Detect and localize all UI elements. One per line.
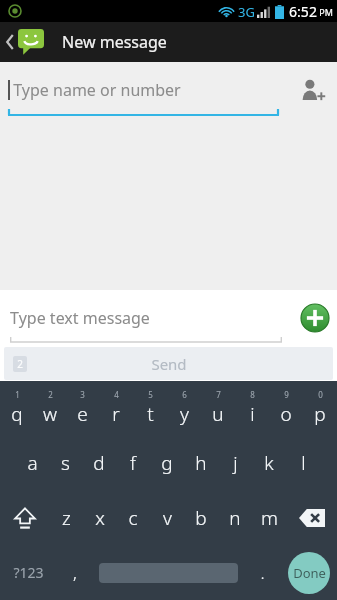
staticText: e bbox=[77, 401, 88, 427]
button[interactable]: d bbox=[82, 435, 116, 490]
staticText: f bbox=[130, 450, 136, 476]
staticText: d bbox=[93, 450, 105, 476]
button[interactable]: k bbox=[252, 435, 286, 490]
button[interactable]: b bbox=[184, 490, 218, 545]
staticText: 2 bbox=[48, 389, 53, 400]
button[interactable]: m bbox=[252, 490, 286, 545]
staticText: s bbox=[61, 450, 70, 476]
button[interactable]: ?123 bbox=[0, 545, 57, 600]
button[interactable]: Type name or number bbox=[0, 62, 289, 118]
button[interactable]: n bbox=[218, 490, 252, 545]
staticText: b bbox=[195, 505, 207, 531]
button[interactable]: 3 bbox=[66, 381, 99, 435]
button[interactable]: Shift bbox=[0, 490, 50, 545]
staticText: j bbox=[233, 450, 238, 476]
staticText: x bbox=[95, 505, 105, 531]
button[interactable]: j bbox=[218, 435, 252, 490]
button[interactable]: , bbox=[57, 545, 93, 600]
button[interactable]: 5 bbox=[133, 381, 167, 435]
button[interactable]: x bbox=[83, 490, 116, 545]
button[interactable]: a bbox=[16, 435, 49, 490]
button[interactable]: g bbox=[150, 435, 184, 490]
staticText: 7 bbox=[216, 389, 221, 400]
button[interactable]: 8 bbox=[235, 381, 269, 435]
staticText: y bbox=[180, 401, 189, 427]
button[interactable]: 0 bbox=[303, 381, 337, 435]
staticText: 0 bbox=[318, 389, 323, 400]
staticText: New message bbox=[62, 31, 167, 53]
button[interactable]: h bbox=[184, 435, 218, 490]
staticText: h bbox=[195, 450, 207, 476]
staticText: k bbox=[264, 450, 274, 476]
staticText: u bbox=[212, 401, 224, 427]
staticText: q bbox=[11, 401, 23, 427]
button[interactable]: . bbox=[244, 545, 280, 600]
button[interactable]: Backspace bbox=[286, 490, 337, 545]
staticText: z bbox=[62, 505, 71, 531]
staticText: PM bbox=[319, 6, 333, 18]
staticText: n bbox=[229, 505, 241, 531]
button[interactable]: l bbox=[286, 435, 320, 490]
staticText: 3 bbox=[80, 389, 85, 400]
button[interactable]: Add attachment bbox=[292, 290, 337, 346]
button[interactable]: 9 bbox=[269, 381, 303, 435]
staticText: p bbox=[314, 401, 326, 427]
staticText: Send bbox=[151, 354, 187, 374]
staticText: 8 bbox=[250, 389, 255, 400]
button[interactable]: Space bbox=[93, 545, 244, 600]
staticText: 6:52 bbox=[289, 2, 317, 21]
staticText: ?123 bbox=[13, 563, 44, 582]
staticText: 3G bbox=[238, 3, 255, 21]
staticText: Type name or number bbox=[13, 79, 181, 101]
button[interactable]: v bbox=[150, 490, 184, 545]
staticText: Done bbox=[293, 564, 326, 582]
staticText: c bbox=[128, 505, 138, 531]
staticText: t bbox=[147, 401, 154, 427]
staticText: , bbox=[73, 561, 77, 584]
staticText: 1 bbox=[15, 389, 20, 400]
button[interactable]: Back bbox=[0, 22, 48, 62]
button[interactable]: 4 bbox=[99, 381, 133, 435]
button[interactable]: f bbox=[116, 435, 150, 490]
staticText: r bbox=[112, 401, 120, 427]
button[interactable]: 2 bbox=[33, 381, 66, 435]
staticText: 2 bbox=[17, 357, 23, 371]
button[interactable]: 2 bbox=[4, 347, 333, 380]
staticText: 9 bbox=[284, 389, 289, 400]
button[interactable]: Add contact bbox=[289, 62, 337, 118]
button[interactable]: s bbox=[49, 435, 82, 490]
button[interactable]: 7 bbox=[201, 381, 235, 435]
staticText: 4 bbox=[114, 389, 119, 400]
staticText: a bbox=[27, 450, 38, 476]
button[interactable]: Done bbox=[280, 545, 337, 600]
staticText: g bbox=[161, 450, 173, 476]
staticText: l bbox=[301, 450, 306, 476]
staticText: w bbox=[43, 401, 57, 427]
staticText: i bbox=[250, 401, 255, 427]
staticText: 5 bbox=[148, 389, 153, 400]
button[interactable]: 6 bbox=[167, 381, 201, 435]
button[interactable]: 1 bbox=[0, 381, 33, 435]
staticText: 6 bbox=[182, 389, 187, 400]
button[interactable]: Type text message bbox=[0, 290, 292, 346]
staticText: v bbox=[163, 505, 172, 531]
staticText: o bbox=[280, 401, 292, 427]
button[interactable]: z bbox=[50, 490, 83, 545]
staticText: Type text message bbox=[10, 307, 150, 329]
staticText: m bbox=[261, 505, 278, 531]
button[interactable]: c bbox=[116, 490, 150, 545]
staticText: . bbox=[260, 561, 265, 584]
